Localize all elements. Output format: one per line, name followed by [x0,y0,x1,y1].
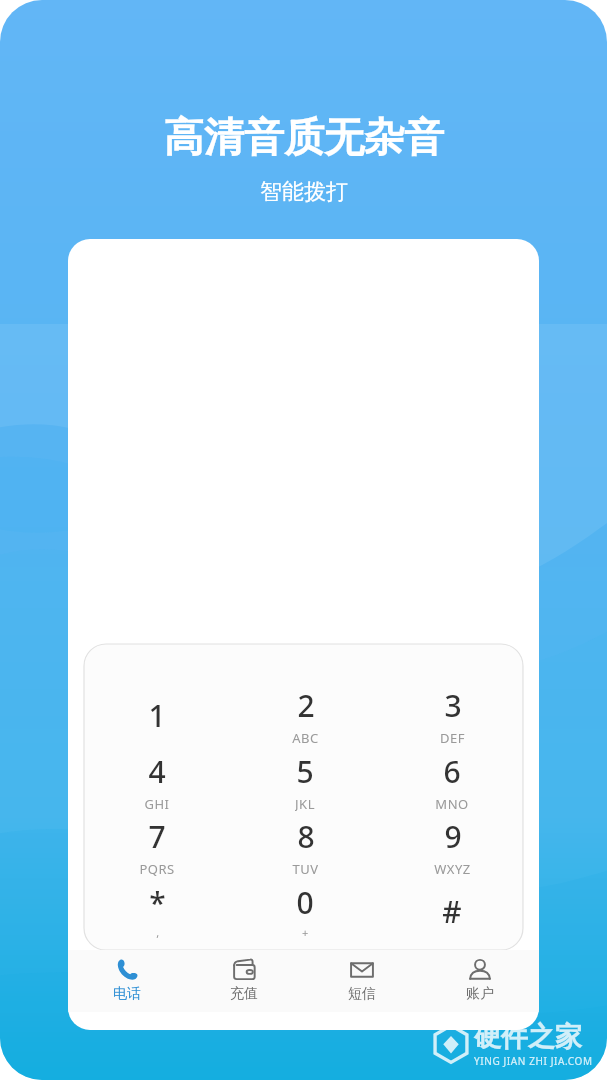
button[interactable]: 2 [249,685,361,745]
button[interactable]: 7 [101,816,213,876]
button[interactable]: 充值 [185,950,303,1012]
staticText: 5 [296,751,314,792]
staticText: ABC [292,729,319,745]
staticText: , [156,925,160,940]
staticText: 电话 [113,985,141,1003]
staticText: MNO [435,795,469,811]
staticText: 硬件之家 [474,1020,582,1054]
staticText: YING JIAN ZHI JIA.COM [474,1054,593,1068]
button[interactable]: 1 [101,685,213,745]
button[interactable]: 4 [101,751,213,811]
staticText: GHI [144,795,170,811]
button[interactable]: # [396,881,508,941]
staticText: 6 [443,751,461,792]
staticText: 7 [148,816,166,857]
staticText: 1 [148,695,166,736]
button[interactable]: 9 [396,816,508,876]
button[interactable]: * [101,881,213,941]
staticText: * [149,882,166,923]
staticText: 3 [444,685,462,726]
staticText: 0 [296,882,314,923]
button[interactable]: 电话 [68,950,185,1012]
staticText: 账户 [466,985,494,1003]
staticText: 高清音质无杂音 [164,112,444,162]
staticText: 短信 [348,985,376,1003]
button[interactable]: 账户 [421,950,539,1012]
staticText: PQRS [139,860,175,876]
staticText: DEF [440,729,465,745]
staticText: 8 [297,816,315,857]
staticText: 9 [444,816,462,857]
button[interactable]: 3 [396,685,508,745]
button[interactable]: 0 [249,881,361,941]
staticText: TUV [292,860,319,876]
staticText: JKL [295,795,315,811]
button[interactable]: 6 [396,751,508,811]
button[interactable]: 8 [249,816,361,876]
staticText: 充值 [230,985,258,1003]
button[interactable]: 短信 [303,950,421,1012]
staticText: WXYZ [434,860,471,876]
staticText: 4 [148,751,166,792]
button[interactable]: 5 [249,751,361,811]
staticText: 智能拨打 [260,178,348,206]
staticText: # [442,891,462,932]
staticText: 2 [297,685,315,726]
staticText: + [302,925,309,940]
